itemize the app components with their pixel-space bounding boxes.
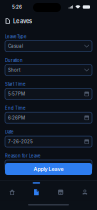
staticText: 7-26-2025 bbox=[8, 139, 33, 144]
staticText: End Time bbox=[5, 106, 25, 111]
staticText: Start Time bbox=[5, 82, 25, 87]
button[interactable]: Home bbox=[0, 181, 24, 201]
button[interactable] bbox=[5, 160, 92, 171]
staticText: Leaves bbox=[13, 17, 32, 25]
staticText: Casual bbox=[8, 43, 23, 49]
button[interactable]: 5:57PM bbox=[5, 88, 92, 99]
button[interactable]: Profile bbox=[73, 181, 97, 201]
button[interactable]: 7-26-2025 bbox=[5, 136, 92, 147]
button[interactable]: 6:26PM bbox=[5, 112, 92, 123]
button[interactable]: Short bbox=[5, 64, 92, 75]
staticText: Duration bbox=[5, 58, 23, 63]
staticText: Date bbox=[5, 129, 13, 135]
button[interactable]: Calendar bbox=[48, 181, 73, 201]
button[interactable]: Apply Leave bbox=[5, 163, 92, 175]
staticText: Leave Type bbox=[5, 34, 26, 39]
button[interactable]: Leaves bbox=[24, 181, 48, 201]
staticText: Apply Leave bbox=[33, 166, 63, 172]
staticText: Reason for Leave bbox=[5, 153, 40, 158]
button[interactable]: Casual bbox=[5, 41, 92, 52]
staticText: Short bbox=[8, 67, 20, 73]
staticText: 6:26PM bbox=[8, 115, 25, 120]
staticText: 5:26 bbox=[12, 4, 22, 10]
staticText: 5:57PM bbox=[8, 91, 25, 97]
